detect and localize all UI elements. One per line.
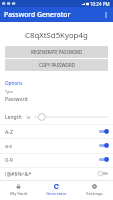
button[interactable]: a-z (0, 139, 113, 152)
button[interactable]: Generator (37, 181, 75, 200)
staticText: Length (5, 114, 22, 121)
staticText: C8qXtSd5Kyop4g (25, 30, 88, 40)
staticText: Password Generator (4, 10, 71, 19)
staticText: Generator (46, 191, 67, 197)
button[interactable]: 0-9 (0, 153, 113, 166)
staticText: 0-9 (5, 156, 13, 163)
staticText: REGENERATE PASSWORD (31, 49, 83, 55)
staticText: Settings (86, 191, 103, 197)
button[interactable]: A-Z (0, 125, 113, 138)
staticText: COPY PASSWORD (39, 62, 75, 68)
staticText: Password (5, 96, 28, 103)
button[interactable]: More options (99, 8, 112, 21)
button[interactable]: !@#$%^&* (0, 167, 113, 180)
staticText: A-Z (5, 128, 13, 135)
button[interactable]: My Vault (0, 181, 37, 200)
staticText: My Vault (10, 191, 28, 197)
button[interactable]: Settings (75, 181, 113, 200)
staticText: Options (5, 80, 23, 86)
staticText: Type (5, 89, 13, 94)
button[interactable]: REGENERATE PASSWORD (5, 46, 108, 58)
button[interactable]: COPY PASSWORD (5, 59, 108, 71)
staticText: a-z (5, 142, 13, 149)
staticText: 14 (26, 115, 31, 120)
staticText: 10:24 PM (90, 1, 110, 7)
staticText: !@#$%^&* (5, 170, 32, 177)
